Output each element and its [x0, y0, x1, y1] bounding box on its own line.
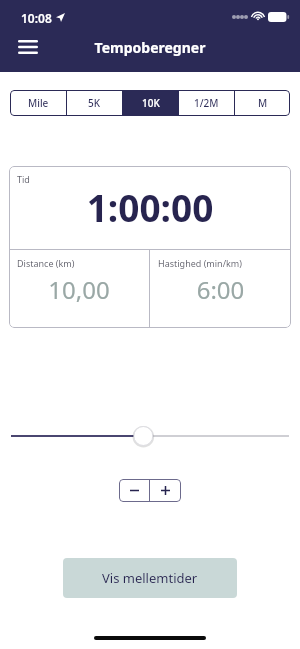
- staticText: Mile: [28, 96, 49, 110]
- button[interactable]: Tid: [9, 166, 291, 249]
- button[interactable]: 10K: [123, 90, 178, 116]
- button[interactable]: Menu: [12, 31, 44, 63]
- button[interactable]: 5K: [67, 90, 122, 116]
- button[interactable]: M: [235, 90, 290, 116]
- staticText: 10,00: [9, 273, 149, 306]
- staticText: 6:00: [150, 273, 291, 306]
- button[interactable]: Decrease: [119, 479, 149, 502]
- staticText: 1/2M: [194, 96, 219, 110]
- staticText: Distance (km): [17, 257, 75, 269]
- button[interactable]: Increase: [150, 479, 181, 502]
- button[interactable]: Mile: [10, 90, 66, 116]
- button[interactable]: Hastighed (min/km): [150, 250, 291, 328]
- staticText: Tempoberegner: [0, 38, 300, 57]
- staticText: Tid: [17, 173, 30, 185]
- button[interactable]: Adjust value: [0, 422, 300, 450]
- staticText: 1:00:00: [9, 182, 291, 232]
- staticText: 5K: [88, 96, 101, 110]
- staticText: Hastighed (min/km): [158, 257, 242, 269]
- button[interactable]: Distance (km): [9, 250, 149, 328]
- button[interactable]: Vis mellemtider: [63, 558, 237, 598]
- staticText: 10K: [142, 96, 160, 110]
- staticText: 10:08: [21, 10, 52, 26]
- staticText: Vis mellemtider: [102, 569, 198, 587]
- staticText: M: [258, 96, 268, 110]
- button[interactable]: 1/2M: [179, 90, 234, 116]
